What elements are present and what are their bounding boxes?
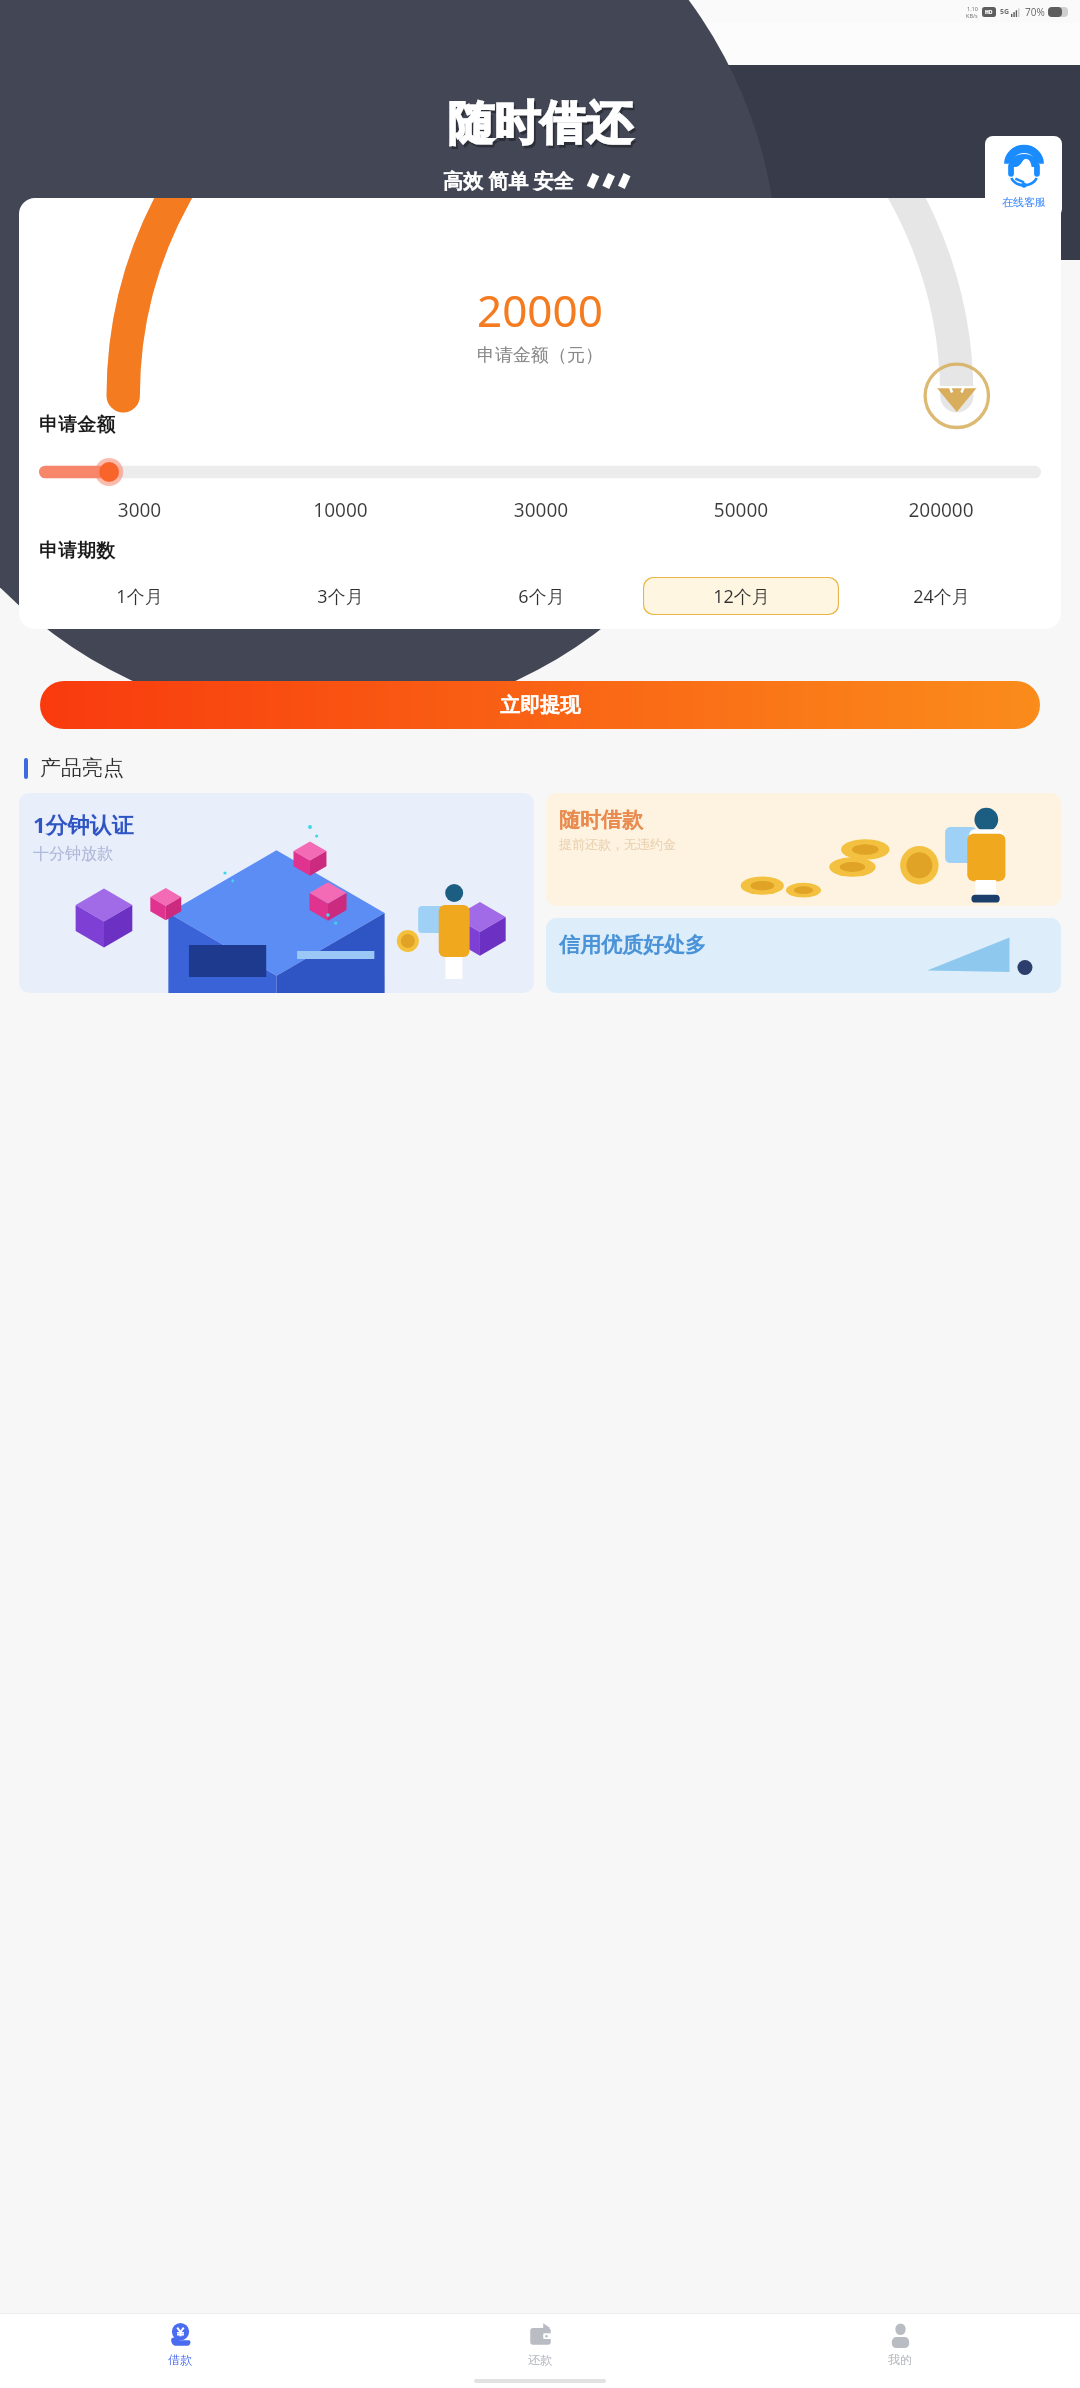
staticText: 5G: [1000, 7, 1010, 17]
staticText: 1个月: [116, 584, 163, 609]
staticText: 在线客服: [1002, 195, 1046, 209]
staticText: 30000: [441, 497, 641, 523]
staticText: 20000: [477, 280, 603, 340]
staticText: 高效 简单 安全: [443, 167, 574, 194]
staticText: 申请期数: [39, 539, 115, 563]
staticText: KB/s: [966, 12, 978, 19]
button[interactable]: [39, 457, 1041, 487]
staticText: 立即提现: [500, 693, 580, 718]
staticText: HD: [985, 9, 993, 16]
staticText: 6个月: [518, 584, 565, 609]
staticText: 12个月: [713, 584, 770, 609]
staticText: 提前还款，无违约金: [559, 836, 676, 852]
button[interactable]: 12个月: [643, 577, 839, 615]
staticText: 申请金额（元）: [477, 344, 603, 367]
staticText: 10000: [240, 497, 441, 523]
button[interactable]: 立即提现: [40, 681, 1040, 729]
staticText: 1分钟认证: [33, 809, 134, 839]
button[interactable]: 在线客服: [985, 136, 1062, 217]
button[interactable]: 我的: [720, 2314, 1080, 2374]
staticText: 借款: [168, 2352, 192, 2367]
staticText: 随时借款: [559, 807, 643, 833]
button[interactable]: 借款: [0, 2314, 360, 2374]
staticText: 申请金额: [39, 413, 115, 437]
button[interactable]: 信用优质好处多: [546, 918, 1061, 993]
button[interactable]: 3个月: [242, 577, 439, 615]
staticText: 信用优质好处多: [559, 932, 706, 958]
staticText: 随时借还: [448, 95, 632, 153]
staticText: 3个月: [317, 584, 364, 609]
button[interactable]: 24个月: [843, 577, 1039, 615]
button[interactable]: 还款: [360, 2314, 720, 2374]
button[interactable]: 1个月: [41, 577, 238, 615]
staticText: 还款: [528, 2352, 552, 2367]
staticText: 产品亮点: [40, 755, 124, 781]
staticText: 24个月: [913, 584, 970, 609]
staticText: 50000: [641, 497, 841, 523]
button[interactable]: 6个月: [443, 577, 639, 615]
staticText: 3000: [39, 497, 240, 523]
staticText: 70%: [1025, 5, 1045, 19]
staticText: 1.10: [967, 5, 978, 12]
staticText: 200000: [841, 497, 1041, 523]
staticText: 十分钟放款: [33, 844, 113, 864]
staticText: 我的: [888, 2352, 912, 2367]
button[interactable]: 随时借款: [546, 793, 1061, 906]
staticText: 随时借还: [450, 98, 634, 156]
button[interactable]: 1分钟认证: [19, 793, 534, 993]
